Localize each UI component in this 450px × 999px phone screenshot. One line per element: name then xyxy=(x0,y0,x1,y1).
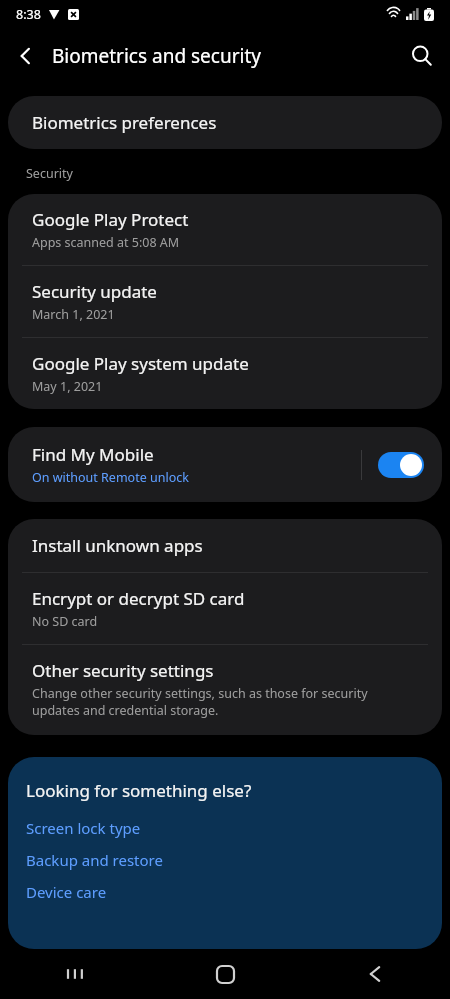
staticText: Google Play system update xyxy=(32,352,249,375)
staticText: Install unknown apps xyxy=(32,534,203,557)
button[interactable]: Backup and restore xyxy=(26,850,163,870)
staticText: Backup and restore xyxy=(26,850,163,870)
staticText: Security update xyxy=(32,280,157,303)
button[interactable]: Encrypt or decrypt SD card xyxy=(8,573,442,644)
staticText: Security xyxy=(26,165,73,182)
button[interactable]: Back xyxy=(300,949,450,999)
staticText: Biometrics and security xyxy=(52,43,262,69)
staticText: 8:38 xyxy=(16,6,41,23)
staticText: Encrypt or decrypt SD card xyxy=(32,587,245,610)
staticText: Biometrics preferences xyxy=(32,111,217,134)
staticText: Other security settings xyxy=(32,659,214,682)
button[interactable]: Biometrics preferences xyxy=(8,96,442,149)
button[interactable]: Install unknown apps xyxy=(8,519,442,572)
button[interactable]: Search xyxy=(394,28,450,84)
staticText: May 1, 2021 xyxy=(32,378,103,395)
button[interactable]: Back xyxy=(0,30,52,82)
staticText: Apps scanned at 5:08 AM xyxy=(32,234,180,251)
button[interactable]: Google Play Protect xyxy=(8,194,442,265)
staticText: March 1, 2021 xyxy=(32,306,115,323)
button[interactable]: Find My Mobile toggle xyxy=(378,452,424,478)
staticText: Google Play Protect xyxy=(32,208,189,231)
button[interactable]: Other security settings xyxy=(8,645,442,735)
staticText: Change other security settings, such as … xyxy=(32,685,368,719)
button[interactable]: Device care xyxy=(26,882,107,902)
button[interactable]: Google Play system update xyxy=(8,338,442,409)
staticText: Device care xyxy=(26,882,107,902)
staticText: On without Remote unlock xyxy=(32,469,189,486)
staticText: No SD card xyxy=(32,613,98,630)
staticText: Find My Mobile xyxy=(32,443,154,466)
button[interactable]: Home xyxy=(150,949,300,999)
staticText: Looking for something else? xyxy=(26,779,252,802)
button[interactable]: Security update xyxy=(8,266,442,337)
button[interactable]: Screen lock type xyxy=(26,818,141,838)
staticText: Screen lock type xyxy=(26,818,141,838)
button[interactable]: Recents xyxy=(0,949,150,999)
button[interactable]: Find My Mobile xyxy=(8,427,442,502)
